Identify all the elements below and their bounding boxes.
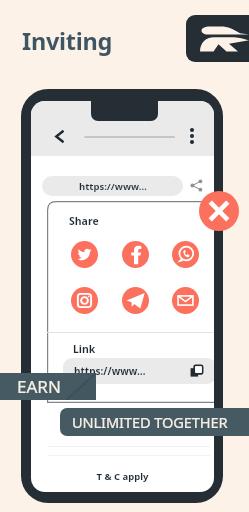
button[interactable]: Twitter bbox=[71, 241, 98, 268]
button[interactable]: Instagram bbox=[71, 287, 98, 314]
other: Copy link bbox=[190, 364, 204, 378]
staticText: Share bbox=[69, 214, 99, 228]
staticText: Link bbox=[73, 342, 96, 356]
button[interactable]: Facebook bbox=[122, 241, 149, 268]
staticText: Inviting bbox=[22, 25, 113, 57]
button[interactable]: https://www… bbox=[42, 176, 183, 196]
button[interactable]: Back bbox=[55, 130, 64, 143]
staticText: T & C apply bbox=[31, 470, 214, 483]
button[interactable]: Share page bbox=[190, 179, 203, 192]
button[interactable]: EARN bbox=[0, 373, 96, 400]
button[interactable]: Email bbox=[172, 287, 199, 314]
button[interactable]: Telegram bbox=[122, 287, 149, 314]
staticText: https://www… bbox=[74, 364, 146, 378]
staticText: EARN bbox=[17, 375, 61, 398]
button[interactable]: More options bbox=[190, 128, 194, 144]
button[interactable]: UNLIMITED TOGETHER bbox=[60, 408, 249, 436]
button[interactable]: https://www… bbox=[63, 358, 214, 384]
button[interactable]: Close bbox=[199, 191, 239, 231]
button[interactable]: Brand logo bbox=[186, 15, 249, 62]
button[interactable]: WhatsApp bbox=[172, 241, 199, 268]
staticText: https://www… bbox=[79, 180, 147, 193]
staticText: UNLIMITED TOGETHER bbox=[72, 412, 228, 432]
